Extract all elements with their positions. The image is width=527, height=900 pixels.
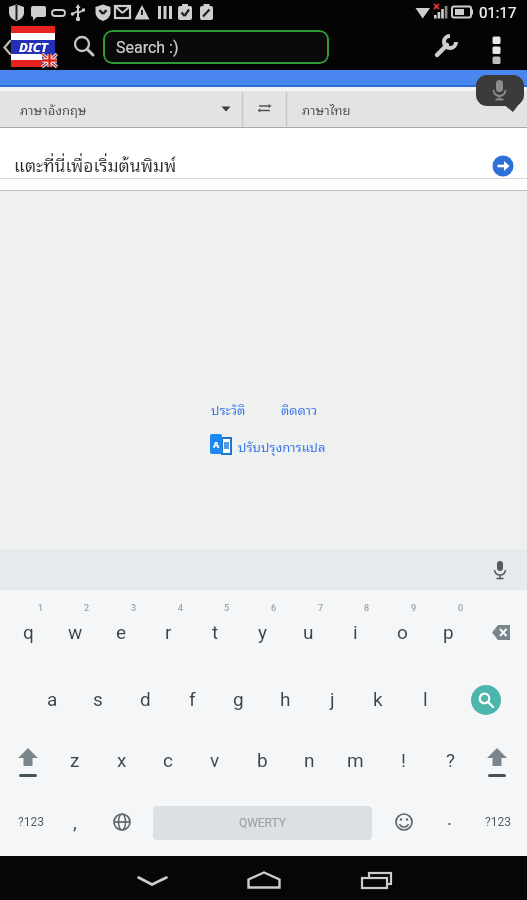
button[interactable] bbox=[480, 28, 512, 68]
staticText: 4 bbox=[178, 603, 184, 614]
button[interactable]: , bbox=[55, 794, 95, 850]
button[interactable]: ! bbox=[381, 731, 425, 789]
staticText: l bbox=[423, 688, 428, 710]
button[interactable] bbox=[430, 28, 466, 68]
staticText: แตะที่นี่เพื่อเริ่มต้นพิมพ์ bbox=[14, 150, 177, 178]
button[interactable] bbox=[490, 152, 518, 180]
staticText: ประวัติ bbox=[211, 399, 246, 420]
button[interactable]: i bbox=[333, 602, 377, 662]
button[interactable]: j bbox=[310, 669, 354, 729]
staticText: 6 bbox=[271, 603, 277, 614]
staticText: ติดดาว bbox=[281, 399, 318, 420]
button[interactable]: u bbox=[286, 602, 330, 662]
staticText: a bbox=[47, 688, 58, 710]
button[interactable]: k bbox=[356, 669, 400, 729]
button[interactable] bbox=[219, 856, 309, 900]
staticText: DICT bbox=[19, 38, 48, 56]
staticText: s bbox=[93, 688, 103, 710]
staticText: 3 bbox=[131, 603, 137, 614]
button[interactable]: z bbox=[53, 731, 97, 789]
staticText: , bbox=[73, 811, 77, 833]
staticText: b bbox=[257, 749, 268, 771]
staticText: 8 bbox=[364, 603, 370, 614]
button[interactable] bbox=[476, 75, 524, 112]
staticText: 9 bbox=[411, 603, 417, 614]
button[interactable]: Search :) bbox=[103, 30, 329, 64]
button[interactable]: ?123 bbox=[9, 794, 53, 850]
staticText: A bbox=[213, 438, 220, 450]
button[interactable]: q bbox=[6, 602, 50, 662]
button[interactable] bbox=[328, 856, 418, 900]
button[interactable]: n bbox=[287, 731, 331, 789]
staticText: p bbox=[443, 621, 454, 643]
staticText: 2 bbox=[84, 603, 90, 614]
button[interactable] bbox=[210, 91, 243, 128]
button[interactable]: y bbox=[240, 602, 284, 662]
staticText: f bbox=[189, 688, 196, 710]
button[interactable]: c bbox=[146, 731, 190, 789]
staticText: 0 bbox=[458, 603, 464, 614]
staticText: d bbox=[140, 688, 151, 710]
staticText: Search :) bbox=[116, 38, 179, 57]
staticText: 7 bbox=[318, 603, 324, 614]
button[interactable]: ประวัติ bbox=[193, 396, 263, 422]
button[interactable]: DICT bbox=[11, 26, 55, 67]
button[interactable] bbox=[0, 128, 527, 178]
button[interactable] bbox=[0, 91, 527, 128]
button[interactable]: ติดดาว bbox=[267, 396, 331, 422]
staticText: c bbox=[163, 749, 173, 771]
button[interactable]: l bbox=[403, 669, 447, 729]
staticText: 5 bbox=[224, 603, 230, 614]
staticText: ภาษาไทย bbox=[302, 99, 351, 120]
staticText: g bbox=[233, 688, 244, 710]
staticText: ! bbox=[401, 749, 406, 771]
button[interactable]: x bbox=[100, 731, 144, 789]
button[interactable]: r bbox=[146, 602, 190, 662]
button[interactable] bbox=[471, 685, 501, 715]
button[interactable]: e bbox=[99, 602, 143, 662]
staticText: j bbox=[330, 688, 335, 710]
button[interactable] bbox=[480, 552, 520, 588]
button[interactable] bbox=[382, 794, 426, 850]
button[interactable]: s bbox=[76, 669, 120, 729]
button[interactable] bbox=[243, 91, 287, 128]
button[interactable]: a bbox=[30, 669, 74, 729]
button[interactable]: ? bbox=[428, 731, 472, 789]
staticText: y bbox=[258, 621, 267, 643]
staticText: u bbox=[303, 621, 314, 643]
staticText: 01:17 bbox=[479, 4, 517, 22]
button[interactable]: f bbox=[170, 669, 214, 729]
staticText: ภาษาอังกฤษ bbox=[20, 99, 87, 120]
button[interactable]: h bbox=[263, 669, 307, 729]
button[interactable]: ?123 bbox=[476, 794, 520, 850]
button[interactable] bbox=[100, 794, 144, 850]
staticText: ปรับปรุงการแปล bbox=[238, 436, 326, 457]
button[interactable]: g bbox=[216, 669, 260, 729]
button[interactable]: v bbox=[193, 731, 237, 789]
button[interactable]: . bbox=[430, 790, 470, 846]
staticText: o bbox=[397, 621, 408, 643]
staticText: e bbox=[116, 621, 127, 643]
button[interactable] bbox=[6, 732, 50, 788]
button[interactable]: w bbox=[53, 602, 97, 662]
staticText: h bbox=[280, 688, 291, 710]
staticText: n bbox=[304, 749, 315, 771]
staticText: ? bbox=[446, 749, 455, 771]
button[interactable]: b bbox=[240, 731, 284, 789]
button[interactable]: d bbox=[123, 669, 167, 729]
button[interactable] bbox=[110, 856, 200, 900]
staticText: QWERTY bbox=[239, 816, 286, 830]
staticText: z bbox=[70, 749, 80, 771]
button[interactable] bbox=[475, 732, 519, 788]
staticText: m bbox=[347, 749, 364, 771]
button[interactable]: QWERTY bbox=[153, 806, 372, 840]
button[interactable]: m bbox=[333, 731, 377, 789]
staticText: 1 bbox=[38, 603, 44, 614]
button[interactable] bbox=[60, 28, 100, 68]
button[interactable]: o bbox=[380, 602, 424, 662]
button[interactable]: t bbox=[193, 602, 237, 662]
button[interactable]: p bbox=[426, 602, 470, 662]
button[interactable]: A bbox=[210, 434, 328, 458]
staticText: k bbox=[373, 688, 383, 710]
button[interactable] bbox=[478, 604, 522, 660]
